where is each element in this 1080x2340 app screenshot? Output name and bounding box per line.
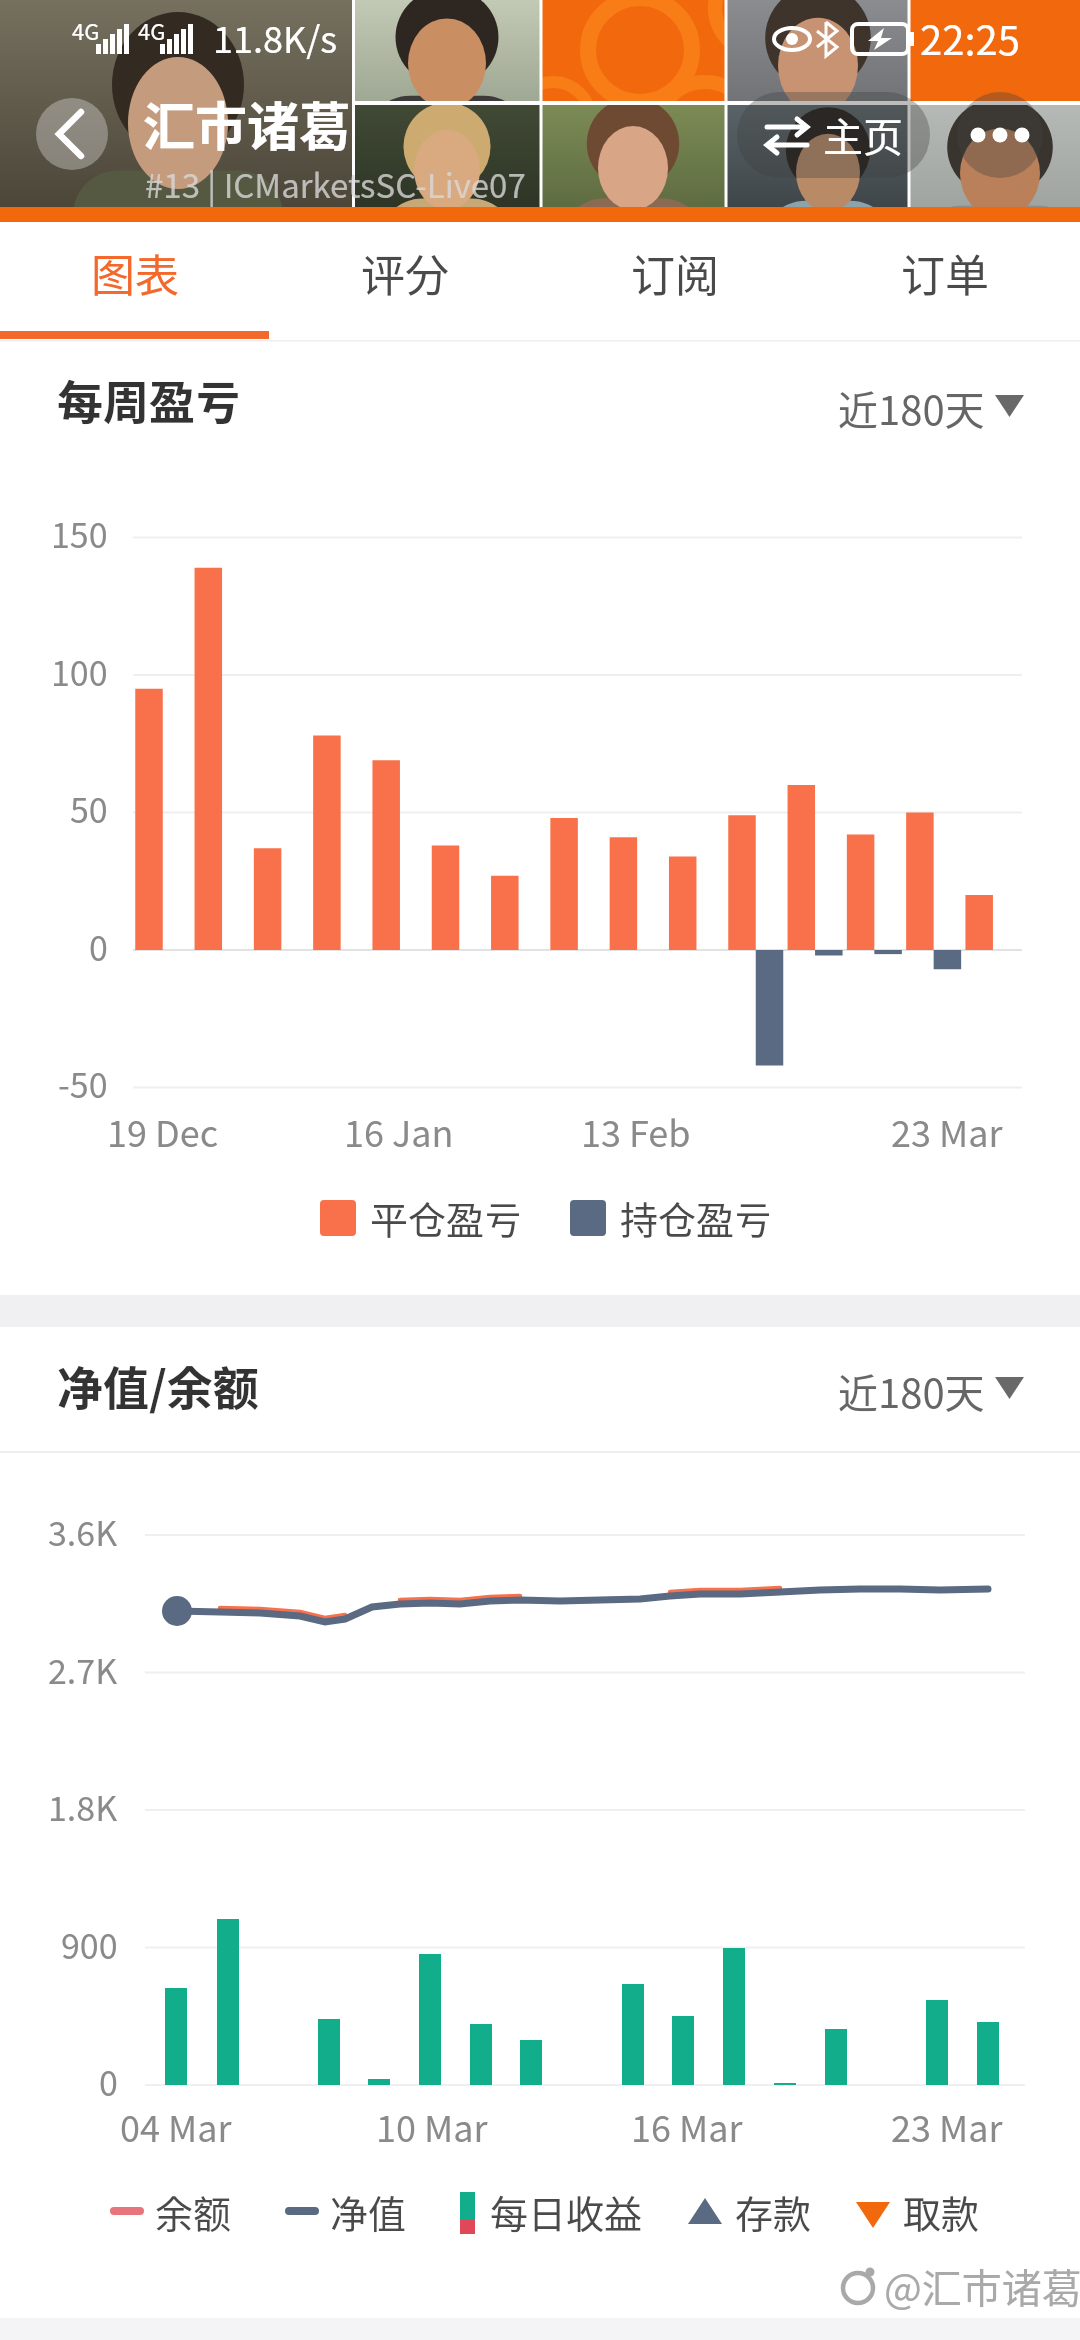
staticText: 每日收益 bbox=[490, 2184, 643, 2239]
button[interactable]: 订阅 bbox=[540, 214, 810, 332]
staticText: 订阅 bbox=[631, 241, 719, 305]
staticText: 4G bbox=[138, 14, 166, 46]
staticText: 19 Dec bbox=[107, 1105, 219, 1157]
staticText: 3.6K bbox=[48, 1507, 118, 1556]
staticText: 近180天 bbox=[838, 379, 985, 435]
staticText: 存款 bbox=[735, 2184, 812, 2239]
staticText: 图表 bbox=[91, 241, 179, 305]
staticText: 16 Jan bbox=[344, 1105, 454, 1157]
button[interactable]: 评分 bbox=[270, 214, 540, 332]
staticText: 23 Mar bbox=[891, 1105, 1003, 1157]
staticText: 50 bbox=[70, 784, 108, 833]
staticText: 2.7K bbox=[48, 1645, 118, 1694]
button[interactable]: 订单 bbox=[810, 214, 1080, 332]
staticText: 1.8K bbox=[48, 1782, 118, 1831]
staticText: 汇市诸葛 bbox=[143, 86, 352, 161]
button[interactable]: 图表 bbox=[0, 214, 270, 332]
staticText: 100 bbox=[51, 647, 108, 696]
button[interactable] bbox=[957, 92, 1043, 178]
staticText: 评分 bbox=[361, 241, 449, 305]
staticText: 150 bbox=[51, 509, 108, 558]
staticText: 23 Mar bbox=[891, 2100, 1003, 2152]
staticText: -50 bbox=[58, 1059, 108, 1108]
staticText: 22:25 bbox=[920, 9, 1020, 67]
staticText: 13 Feb bbox=[581, 1105, 691, 1157]
staticText: 4G bbox=[72, 14, 100, 46]
staticText: 每周盈亏 bbox=[57, 366, 241, 433]
button[interactable] bbox=[36, 98, 108, 170]
staticText: 11.8K/s bbox=[213, 11, 338, 63]
staticText: 取款 bbox=[903, 2184, 980, 2239]
staticText: 04 Mar bbox=[120, 2100, 232, 2152]
staticText: @汇市诸葛 bbox=[884, 2257, 1080, 2315]
staticText: 持仓盈亏 bbox=[620, 1190, 773, 1245]
staticText: 0 bbox=[89, 922, 108, 971]
staticText: 900 bbox=[61, 1920, 118, 1969]
staticText: 0 bbox=[99, 2057, 118, 2106]
staticText: 10 Mar bbox=[376, 2100, 488, 2152]
staticText: 订单 bbox=[901, 241, 989, 305]
button[interactable]: 近180天 bbox=[700, 1362, 985, 1418]
staticText: 平仓盈亏 bbox=[370, 1190, 523, 1245]
staticText: #13 | ICMarketsSC-Live07 bbox=[145, 160, 526, 208]
button[interactable]: 主页 bbox=[737, 92, 930, 178]
staticText: 净值 bbox=[330, 2184, 407, 2239]
button[interactable]: 近180天 bbox=[700, 379, 985, 435]
staticText: 余额 bbox=[155, 2184, 232, 2239]
staticText: 近180天 bbox=[838, 1362, 985, 1418]
staticText: 16 Mar bbox=[631, 2100, 743, 2152]
staticText: 主页 bbox=[823, 106, 903, 164]
staticText: 净值/余额 bbox=[57, 1352, 259, 1419]
